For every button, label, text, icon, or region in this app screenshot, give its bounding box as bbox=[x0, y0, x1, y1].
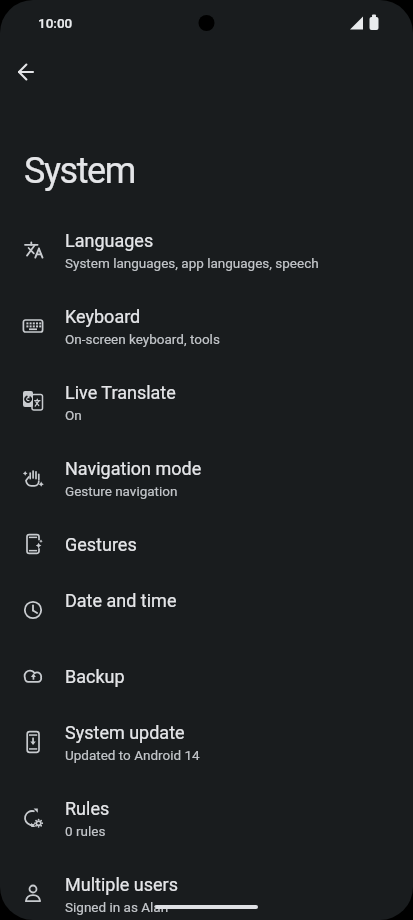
staticText: Live Translate bbox=[65, 382, 176, 403]
button[interactable]: System update bbox=[0, 704, 413, 780]
button[interactable]: Languages bbox=[0, 212, 413, 288]
staticText: System languages, app languages, speech bbox=[65, 255, 319, 271]
button[interactable]: Navigation mode bbox=[0, 440, 413, 516]
staticText: Multiple users bbox=[65, 874, 178, 895]
button[interactable]: Multiple users bbox=[0, 856, 413, 920]
staticText: System bbox=[24, 150, 135, 192]
staticText: Date and time bbox=[65, 590, 177, 611]
staticText: 10:00 bbox=[38, 15, 73, 31]
staticText: Navigation mode bbox=[65, 458, 202, 479]
button[interactable] bbox=[8, 54, 44, 90]
button[interactable]: Keyboard bbox=[0, 288, 413, 364]
button[interactable]: Live Translate bbox=[0, 364, 413, 440]
staticText: Signed in as Alan bbox=[65, 899, 169, 915]
staticText: 0 rules bbox=[65, 823, 106, 839]
staticText: Backup bbox=[65, 666, 125, 687]
staticText: Gesture navigation bbox=[65, 483, 178, 499]
button[interactable]: Gestures bbox=[0, 516, 413, 572]
staticText: System update bbox=[65, 722, 185, 743]
staticText: Languages bbox=[65, 230, 154, 251]
staticText: Updated to Android 14 bbox=[65, 747, 200, 763]
staticText: Keyboard bbox=[65, 306, 141, 327]
button[interactable]: Date and time bbox=[0, 572, 413, 648]
staticText: Rules bbox=[65, 798, 110, 819]
button[interactable]: Backup bbox=[0, 648, 413, 704]
staticText: On-screen keyboard, tools bbox=[65, 331, 220, 347]
staticText: On bbox=[65, 407, 82, 423]
button[interactable]: Rules bbox=[0, 780, 413, 856]
staticText: Gestures bbox=[65, 534, 137, 555]
